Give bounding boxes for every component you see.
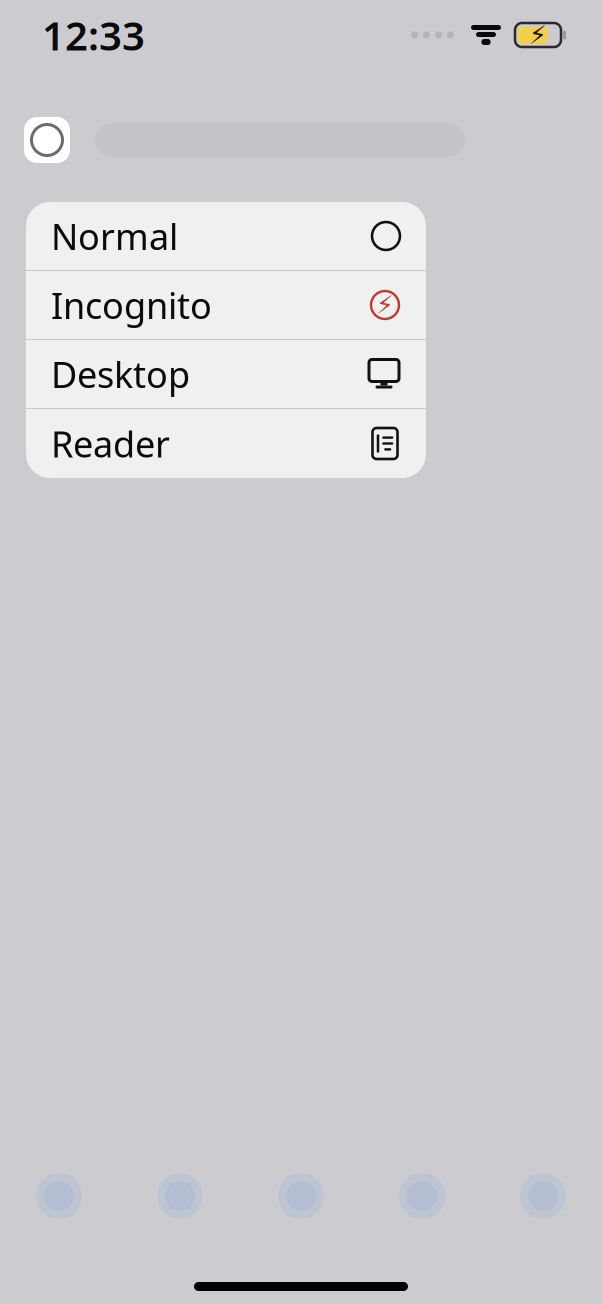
staticText: Desktop [51, 350, 190, 398]
button[interactable]: Incognito [26, 271, 426, 340]
staticText: 12:33 [42, 8, 145, 61]
staticText: Reader [51, 420, 170, 467]
button[interactable]: Reader [26, 409, 426, 478]
staticText: ⚡︎ [529, 21, 547, 49]
button[interactable]: Browsing mode [24, 117, 70, 163]
staticText: Incognito [51, 281, 212, 329]
staticText: Normal [51, 212, 178, 260]
button[interactable]: Desktop [26, 340, 426, 409]
staticText: ⚡︎ [376, 291, 394, 319]
button[interactable]: Normal [26, 202, 426, 271]
